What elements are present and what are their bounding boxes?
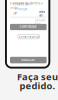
staticText: CONTINUAR (20, 25, 37, 29)
staticText: Faça seu (17, 71, 58, 83)
staticText: CEP (12, 11, 17, 15)
button[interactable]: CONTINUAR (0, 0, 58, 100)
button[interactable]: FINALIZAR (0, 0, 58, 100)
button[interactable]: não sei (0, 0, 58, 100)
staticText: Precisamos saber onde (10, 3, 32, 10)
staticText: INFORME SEU ENDEREÇO (13, 1, 43, 5)
staticText: entregar (15, 7, 27, 11)
staticText: pedido. (19, 80, 55, 92)
button[interactable]: entrar na conta (0, 0, 58, 100)
staticText: entrar na conta (19, 35, 39, 38)
staticText: FINALIZAR (21, 58, 35, 62)
staticText: obrigatório (35, 18, 46, 25)
staticText: não sei (39, 10, 45, 17)
